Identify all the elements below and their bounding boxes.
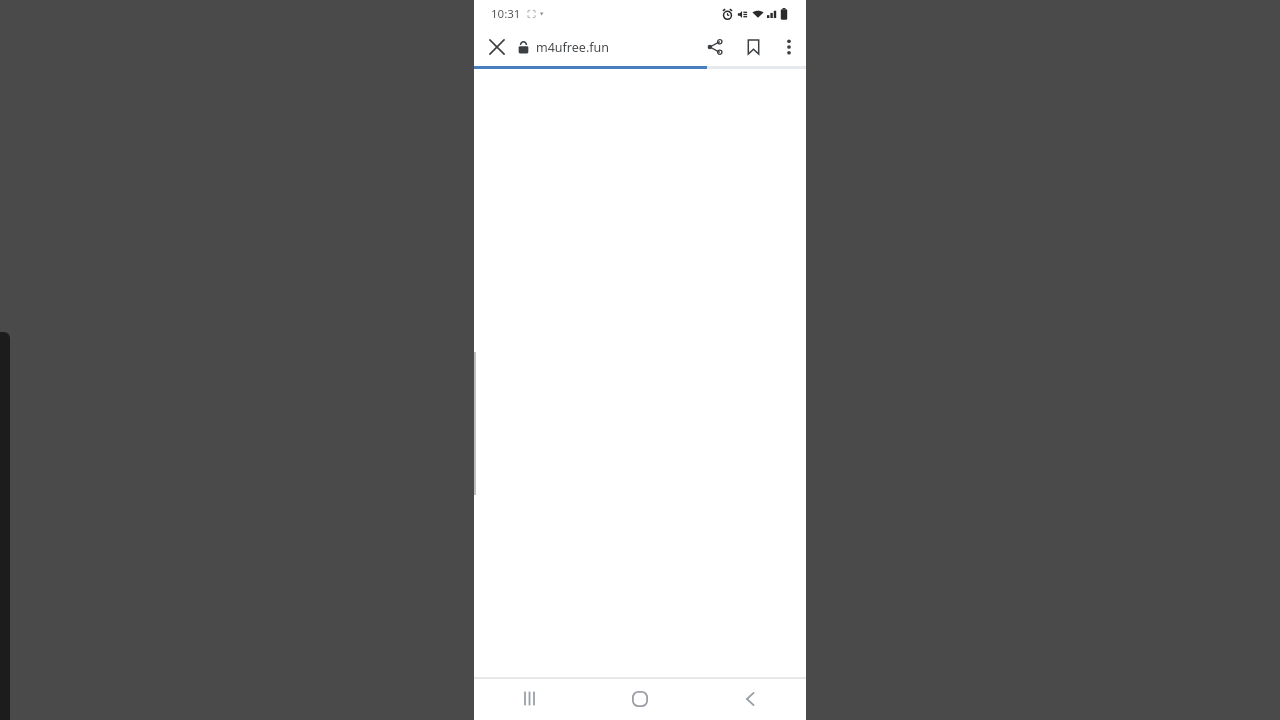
button[interactable]: Home (584, 677, 695, 720)
button[interactable]: Back (695, 677, 806, 720)
button[interactable]: Bookmark (734, 28, 772, 66)
staticText: 10:31 (491, 6, 521, 22)
staticText: m4ufree.fun (536, 39, 609, 56)
button[interactable]: Close (479, 29, 515, 65)
button[interactable]: Share (696, 28, 734, 66)
button[interactable]: More options (772, 30, 806, 64)
button[interactable]: Recent apps (474, 677, 584, 720)
button[interactable]: m4ufree.fun (518, 28, 609, 66)
